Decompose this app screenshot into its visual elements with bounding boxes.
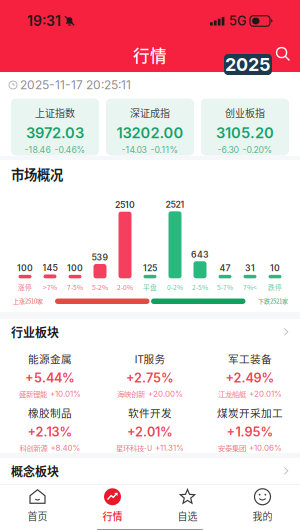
staticText: +11.31% xyxy=(155,443,184,453)
staticText: 125 xyxy=(143,263,157,273)
button[interactable]: 行业板块 xyxy=(0,319,300,345)
staticText: 31 xyxy=(245,263,255,273)
staticText: 2025-11-17 20:25:11 xyxy=(20,78,131,92)
button[interactable]: 军工装备 xyxy=(200,345,300,399)
staticText: 深证成指 xyxy=(130,105,170,120)
staticText: 3972.03 xyxy=(26,124,84,142)
staticText: 13202.00 xyxy=(116,124,183,142)
staticText: 盛新锂能 xyxy=(19,389,47,399)
button[interactable]: IT服务 xyxy=(100,345,200,399)
staticText: 市场概况 xyxy=(11,164,63,184)
button[interactable]: 行情 xyxy=(75,485,150,525)
staticText: +10.06% xyxy=(249,443,282,453)
staticText: 能源金属 xyxy=(28,351,72,366)
staticText: +2.49% xyxy=(225,370,274,386)
staticText: 江龙船艇 xyxy=(218,389,246,399)
button[interactable]: 上证指数 xyxy=(11,98,99,155)
button[interactable]: 橡胶制品 xyxy=(0,399,100,453)
staticText: 2510 xyxy=(115,200,135,210)
staticText: 软件开发 xyxy=(128,405,172,420)
button[interactable]: 创业板指 xyxy=(201,98,289,155)
staticText: 平盘 xyxy=(143,282,157,292)
staticText: 行情 xyxy=(133,43,167,67)
staticText: 首页 xyxy=(27,509,47,523)
staticText: 643 xyxy=(191,249,209,260)
staticText: 我的 xyxy=(252,509,272,523)
staticText: +2.75% xyxy=(126,370,174,386)
staticText: +10.01% xyxy=(50,389,81,399)
staticText: 2521 xyxy=(165,199,184,210)
staticText: -6.30 -0.20% xyxy=(217,145,272,155)
staticText: 下跌2521家 xyxy=(258,297,288,305)
staticText: 7%< xyxy=(243,282,257,292)
staticText: 10 xyxy=(270,263,280,273)
staticText: +20.00% xyxy=(148,389,183,399)
staticText: 海峡创新 xyxy=(117,389,145,399)
button[interactable]: 能源金属 xyxy=(0,345,100,399)
staticText: 概念板块 xyxy=(11,462,59,480)
staticText: 5-2% xyxy=(92,282,108,292)
staticText: 煤炭开采加工 xyxy=(217,405,283,420)
staticText: 行情 xyxy=(102,509,122,523)
staticText: +5.44% xyxy=(25,370,75,386)
staticText: 涨停 xyxy=(18,282,32,292)
staticText: 539 xyxy=(91,252,108,262)
staticText: 2025 xyxy=(225,54,271,75)
button[interactable]: 首页 xyxy=(0,485,75,525)
staticText: +2.13% xyxy=(27,424,72,440)
staticText: 安泰集团 xyxy=(218,443,246,453)
button[interactable]: 自选 xyxy=(150,485,225,525)
staticText: 3105.20 xyxy=(216,124,274,142)
staticText: >7% xyxy=(43,282,57,292)
button[interactable]: 搜索 xyxy=(273,44,293,64)
staticText: 2-5% xyxy=(192,282,208,292)
staticText: 上证指数 xyxy=(35,105,75,120)
staticText: -18.46 -0.46% xyxy=(24,145,85,155)
staticText: 2-0% xyxy=(117,282,133,292)
staticText: 跌停 xyxy=(268,282,282,292)
staticText: 100 xyxy=(17,263,33,273)
staticText: +20.01% xyxy=(249,389,282,399)
button[interactable]: 我的 xyxy=(225,485,300,525)
staticText: 19:31 xyxy=(27,12,61,29)
staticText: 0-2% xyxy=(167,282,183,292)
staticText: 行业板块 xyxy=(11,323,59,341)
button[interactable]: 概念板块 xyxy=(0,458,300,484)
staticText: 100 xyxy=(67,263,83,273)
button[interactable]: 软件开发 xyxy=(100,399,200,453)
staticText: +2.01% xyxy=(127,424,173,440)
staticText: 5G xyxy=(229,13,246,29)
staticText: +1.95% xyxy=(226,424,273,440)
staticText: 自选 xyxy=(177,509,197,523)
staticText: 47 xyxy=(219,263,230,273)
staticText: 7-5% xyxy=(67,282,83,292)
staticText: 橡胶制品 xyxy=(28,405,72,420)
staticText: 5-7% xyxy=(217,282,233,292)
staticText: -14.03 -0.11% xyxy=(121,145,178,155)
staticText: 上涨2510家 xyxy=(13,297,43,305)
staticText: 科创新源 xyxy=(19,443,47,453)
staticText: 军工装备 xyxy=(228,351,272,366)
staticText: 星环科技-U xyxy=(116,443,152,453)
staticText: +8.40% xyxy=(50,443,80,453)
staticText: 145 xyxy=(42,262,57,273)
button[interactable]: 深证成指 xyxy=(106,98,194,155)
button[interactable]: 煤炭开采加工 xyxy=(200,399,300,453)
staticText: IT服务 xyxy=(134,351,165,366)
staticText: 创业板指 xyxy=(225,105,265,120)
